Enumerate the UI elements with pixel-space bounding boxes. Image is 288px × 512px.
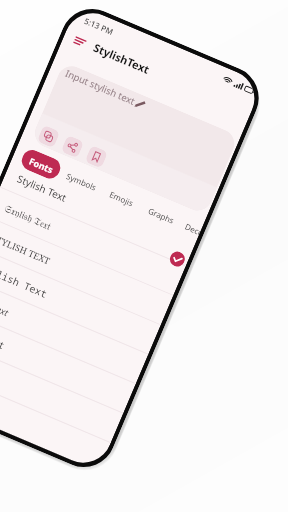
button[interactable]: STYLISH TEXT [0, 217, 173, 324]
staticText: 5:13 PM [83, 15, 116, 37]
button[interactable]: Save [85, 145, 108, 169]
staticText: Stylish Text [0, 290, 11, 318]
button[interactable]: Stylish Text [0, 276, 148, 383]
button[interactable]: Copy [37, 125, 60, 148]
button[interactable]: Stylish Text [0, 305, 136, 413]
button[interactable]: Stylish Text [0, 364, 111, 472]
staticText: Input stylish text [63, 67, 137, 108]
staticText: Graphs [147, 205, 177, 226]
button[interactable]: Fonts [19, 147, 64, 182]
button[interactable]: 𝔖𝔵𝔶𝔩𝔦𝔰𝔥 𝔗𝔢𝔵𝔱 [0, 187, 186, 295]
staticText: Stylish Text [15, 171, 69, 205]
button[interactable]: Stylish Text [0, 246, 161, 354]
button[interactable]: Symbols [61, 166, 102, 197]
staticText: STYLISH TEXT [0, 231, 52, 266]
button[interactable]: History [167, 249, 187, 269]
button[interactable]: Menu [72, 33, 89, 50]
staticText: 𝔖𝔵𝔶𝔩𝔦𝔰𝔥 𝔗𝔢𝔵𝔱 [3, 201, 54, 233]
staticText: Fonts [27, 155, 55, 175]
staticText: Deco [183, 221, 202, 237]
button[interactable]: Emojis [104, 185, 139, 212]
staticText: StylishText [91, 40, 152, 77]
staticText: Emojis [108, 188, 135, 208]
button[interactable]: Share [61, 135, 84, 158]
button[interactable]: Stylish Text [0, 335, 123, 442]
staticText: Stylish Text [0, 319, 7, 352]
button[interactable]: Stylish Text [0, 158, 198, 265]
button[interactable]: Deco [179, 217, 204, 240]
button[interactable]: Graphs [143, 201, 181, 230]
staticText: Stylish Text [0, 260, 49, 301]
staticText: Symbols [65, 170, 98, 193]
